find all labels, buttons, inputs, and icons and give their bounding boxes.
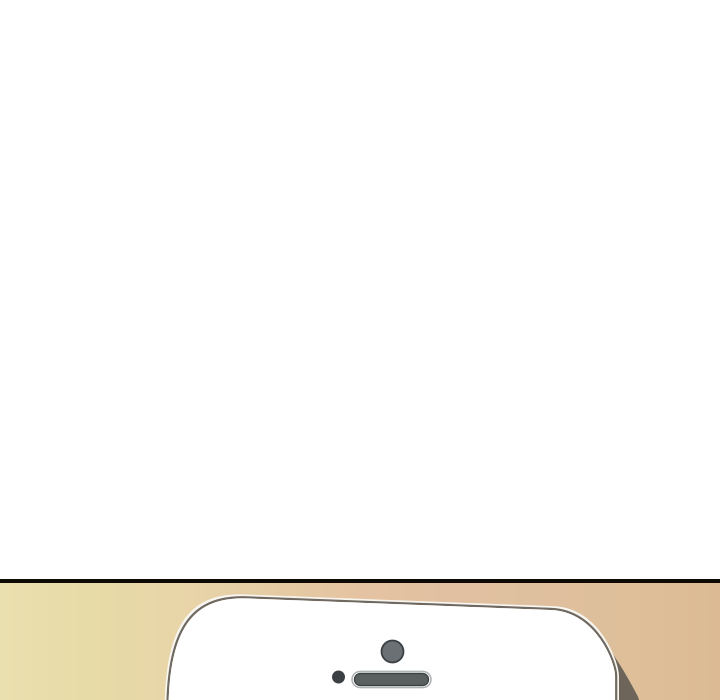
button[interactable]: Comic panel (0, 0, 720, 700)
